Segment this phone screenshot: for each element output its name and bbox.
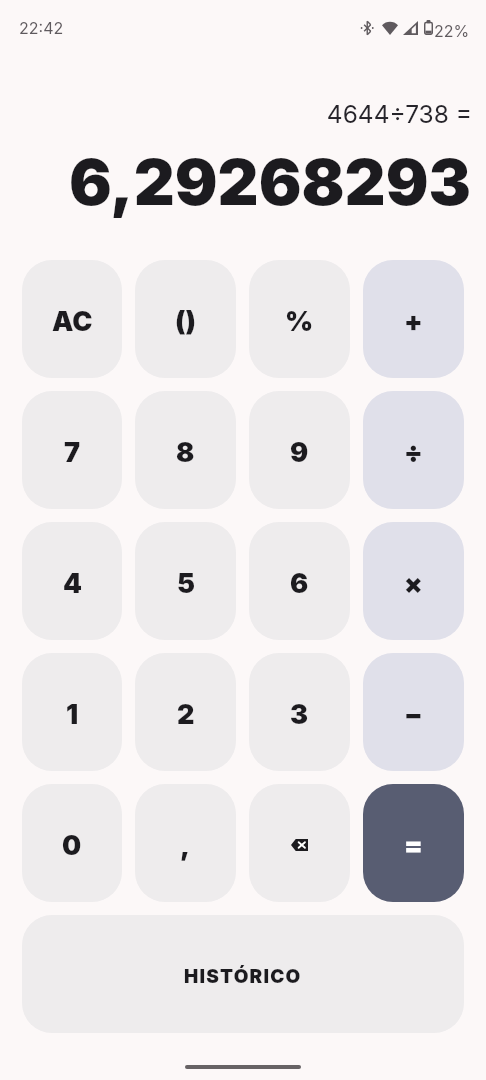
staticText: () — [175, 305, 196, 338]
staticText: ÷ — [404, 436, 423, 469]
staticText: × — [404, 567, 423, 600]
button[interactable]: 2 — [135, 653, 236, 771]
staticText: AC — [52, 305, 93, 338]
staticText: % — [285, 305, 314, 338]
staticText: 1 — [66, 698, 79, 731]
staticText: 22:42 — [19, 18, 64, 37]
button[interactable]: () — [135, 260, 236, 378]
staticText: + — [404, 305, 423, 338]
staticText: 5 — [177, 567, 195, 600]
button[interactable]: 7 — [22, 391, 122, 509]
button[interactable]: 1 — [22, 653, 122, 771]
staticText: 9 — [290, 436, 309, 469]
button[interactable]: + — [363, 260, 464, 378]
button[interactable]: , — [135, 784, 236, 902]
staticText: 4 — [63, 567, 82, 600]
staticText: , — [180, 829, 191, 862]
staticText: 6,29268293 — [0, 143, 471, 220]
staticText: 7 — [64, 436, 81, 469]
button[interactable]: 9 — [249, 391, 350, 509]
staticText: 8 — [176, 436, 195, 469]
button[interactable]: = — [363, 784, 464, 902]
button[interactable]: 3 — [249, 653, 350, 771]
button[interactable]: % — [249, 260, 350, 378]
other: Backspace — [291, 839, 308, 851]
button[interactable]: AC — [22, 260, 122, 378]
button[interactable]: ÷ — [363, 391, 464, 509]
button[interactable]: HISTÓRICO — [22, 915, 464, 1033]
staticText: 2 — [177, 698, 195, 731]
button[interactable]: × — [363, 522, 464, 640]
button[interactable]: 5 — [135, 522, 236, 640]
button[interactable]: 0 — [22, 784, 122, 902]
button[interactable]: 4 — [22, 522, 122, 640]
staticText: − — [404, 698, 423, 731]
staticText: 4644÷738 = — [0, 99, 472, 129]
staticText: 0 — [62, 829, 82, 862]
staticText: 22% — [434, 21, 470, 40]
button[interactable]: − — [363, 653, 464, 771]
staticText: 3 — [290, 698, 309, 731]
button[interactable]: 6 — [249, 522, 350, 640]
button[interactable]: Backspace — [249, 784, 350, 902]
button[interactable]: 8 — [135, 391, 236, 509]
staticText: = — [404, 829, 423, 862]
staticText: 6 — [290, 567, 309, 600]
staticText: HISTÓRICO — [184, 965, 302, 988]
